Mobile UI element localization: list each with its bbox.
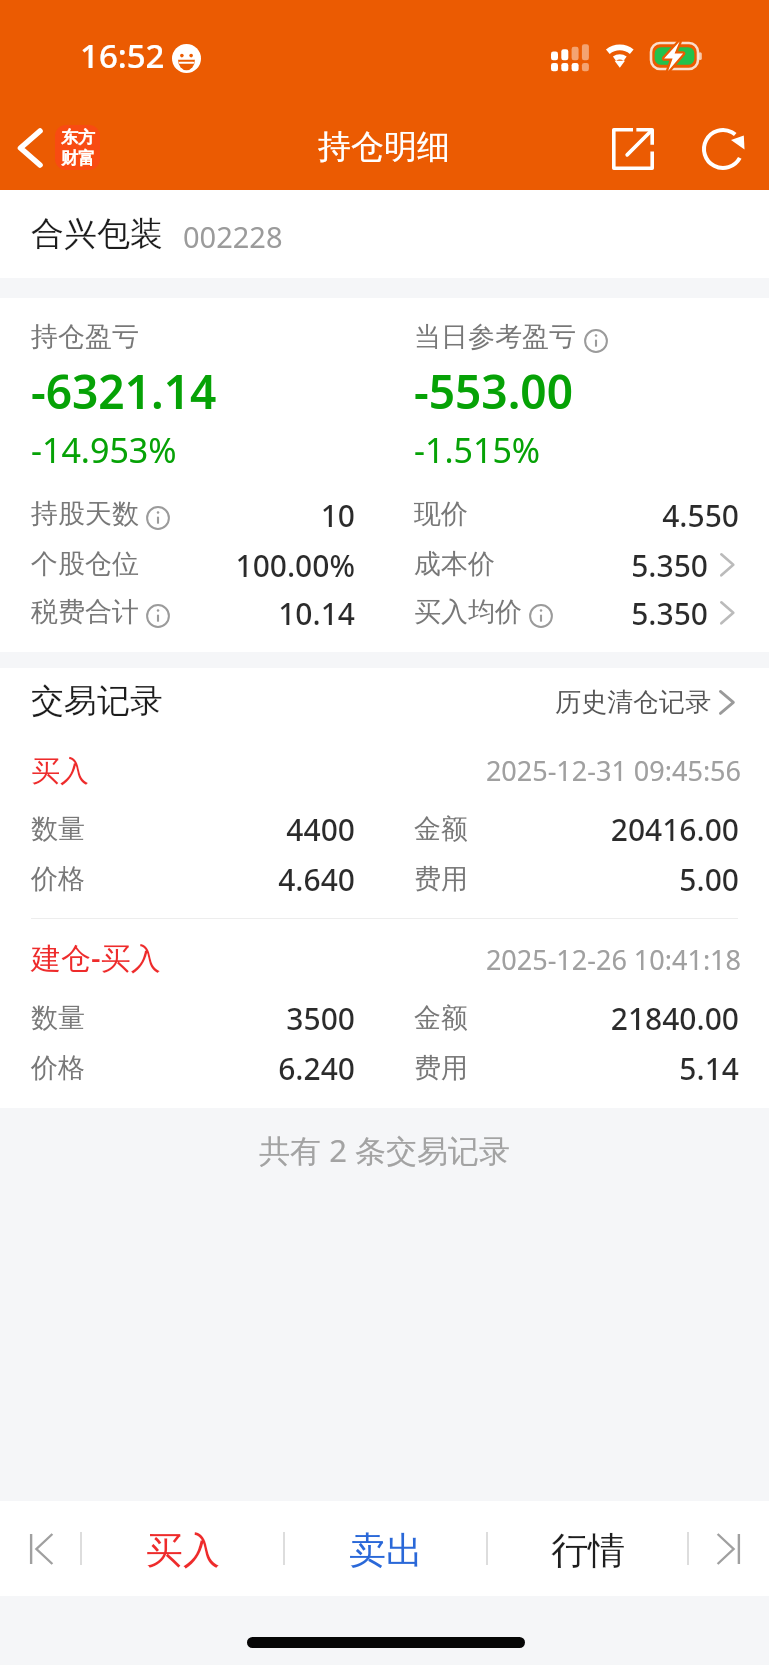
staticText: 买入 [31, 753, 89, 790]
staticText: 行情 [551, 1527, 625, 1574]
staticText: 买入均价 [414, 595, 522, 629]
staticText: 数量 [31, 812, 85, 846]
staticText: 21840.00 [0, 998, 739, 1039]
button[interactable]: East Money [55, 125, 100, 170]
staticText: 5.350 [0, 545, 708, 586]
staticText: 6.240 [0, 1048, 355, 1089]
staticText: 002228 [183, 217, 283, 256]
staticText: 金额 [414, 812, 468, 846]
staticText: 成本价 [414, 547, 495, 581]
staticText: 16:52 [80, 33, 165, 78]
staticText: 财富 [61, 148, 95, 169]
staticText: 10.14 [0, 593, 355, 634]
staticText: -14.953% [31, 427, 177, 473]
button[interactable]: Last [688, 1501, 769, 1596]
button[interactable]: 历史清仓记录 [555, 686, 735, 719]
staticText: 东方 [61, 127, 95, 148]
staticText: -6321.14 [31, 360, 217, 423]
button[interactable]: 卖出 [284, 1501, 487, 1596]
staticText: 持仓明细 [318, 126, 450, 168]
staticText: 2025-12-26 10:41:18 [0, 941, 741, 978]
staticText: 10 [0, 495, 355, 536]
staticText: 共有 2 条交易记录 [0, 1129, 769, 1171]
staticText: 5.00 [0, 859, 739, 900]
staticText: 100.00% [0, 545, 355, 586]
staticText: 2025-12-31 09:45:56 [0, 752, 741, 789]
button[interactable]: Share [602, 118, 664, 180]
staticText: 现价 [414, 497, 468, 531]
staticText: 价格 [31, 1051, 85, 1085]
button[interactable]: Refresh [693, 117, 755, 179]
staticText: -1.515% [414, 427, 541, 473]
staticText: 卖出 [349, 1527, 423, 1574]
staticText: 费用 [414, 862, 468, 896]
button[interactable]: First [0, 1501, 81, 1596]
button[interactable]: 买入 [81, 1501, 284, 1596]
staticText: 4.640 [0, 859, 355, 900]
staticText: 交易记录 [31, 680, 163, 722]
button[interactable]: Back [8, 118, 68, 178]
staticText: 建仓-买入 [31, 937, 161, 978]
button[interactable]: 行情 [487, 1501, 688, 1596]
staticText: 历史清仓记录 [555, 686, 711, 719]
staticText: 买入 [146, 1527, 220, 1574]
staticText: 个股仓位 [31, 547, 139, 581]
staticText: 3500 [0, 998, 355, 1039]
staticText: 价格 [31, 862, 85, 896]
staticText: 4.550 [0, 495, 739, 536]
staticText: 合兴包装 [31, 213, 163, 255]
staticText: 数量 [31, 1001, 85, 1035]
staticText: 金额 [414, 1001, 468, 1035]
staticText: 持股天数 [31, 497, 139, 531]
staticText: -553.00 [414, 360, 573, 423]
staticText: 当日参考盈亏 [414, 320, 576, 354]
staticText: 5.14 [0, 1048, 739, 1089]
staticText: 5.350 [0, 593, 708, 634]
staticText: 4400 [0, 809, 355, 850]
staticText: 20416.00 [0, 809, 739, 850]
staticText: 税费合计 [31, 595, 139, 629]
staticText: 费用 [414, 1051, 468, 1085]
staticText: 持仓盈亏 [31, 320, 139, 354]
